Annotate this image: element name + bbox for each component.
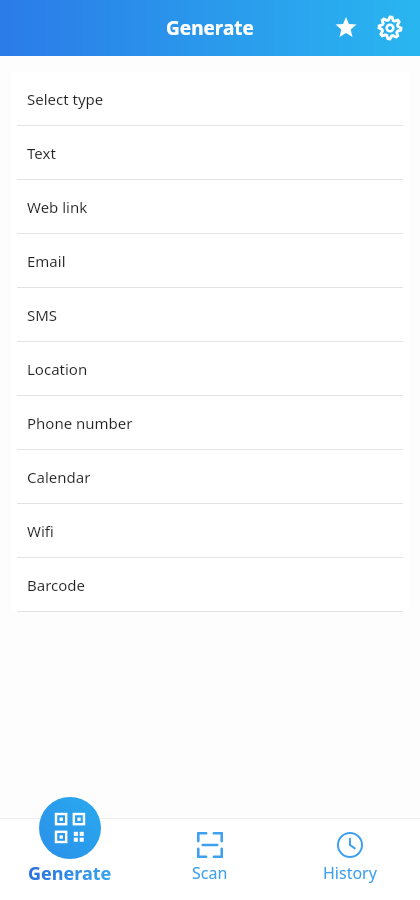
staticText: Email: [27, 251, 66, 271]
button[interactable]: Location: [11, 342, 409, 396]
button[interactable]: Phone number: [11, 396, 409, 450]
staticText: Barcode: [27, 575, 86, 595]
staticText: Generate: [28, 861, 112, 886]
button[interactable]: Web link: [11, 180, 409, 234]
staticText: Wifi: [27, 521, 54, 541]
staticText: Web link: [27, 197, 88, 217]
button[interactable]: Select type: [11, 72, 409, 126]
button[interactable]: Email: [11, 234, 409, 288]
staticText: Location: [27, 359, 88, 379]
button[interactable]: Wifi: [11, 504, 409, 558]
button[interactable]: SMS: [11, 288, 409, 342]
button[interactable]: Scan: [140, 782, 280, 900]
staticText: Scan: [192, 862, 228, 884]
button[interactable]: Calendar: [11, 450, 409, 504]
staticText: Text: [27, 143, 56, 163]
staticText: Phone number: [27, 413, 133, 433]
staticText: Select type: [27, 89, 104, 109]
staticText: SMS: [27, 305, 58, 325]
button[interactable]: History: [280, 782, 420, 900]
button[interactable]: Favorites: [324, 6, 368, 50]
button[interactable]: Barcode: [11, 558, 409, 612]
button[interactable]: Settings: [368, 6, 412, 50]
staticText: History: [323, 862, 377, 884]
button[interactable]: Text: [11, 126, 409, 180]
staticText: Generate: [166, 15, 254, 41]
button[interactable]: Generate: [0, 782, 140, 900]
staticText: Calendar: [27, 467, 91, 487]
